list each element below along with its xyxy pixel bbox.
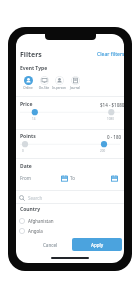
staticText: Online	[20, 86, 36, 90]
button[interactable]: Apply	[72, 238, 122, 251]
staticText: Afghanistan	[28, 218, 54, 224]
staticText: Apply	[91, 242, 104, 248]
staticText: Price	[20, 101, 33, 108]
staticText: Clear filters	[97, 51, 124, 58]
staticText: 200	[100, 149, 106, 153]
button[interactable]: In-person	[51, 76, 67, 90]
other: Search	[19, 195, 25, 201]
staticText: 0	[22, 149, 24, 153]
staticText: Country	[20, 206, 41, 213]
staticText: On-Site	[36, 86, 52, 90]
other: Pick date	[111, 175, 118, 182]
staticText: Cancel	[43, 242, 58, 248]
other: Pick date	[61, 175, 68, 182]
staticText: 1080	[107, 117, 114, 121]
staticText: In-person	[51, 86, 67, 90]
staticText: To	[70, 175, 75, 181]
button[interactable]: Cancel	[30, 238, 70, 251]
staticText: Points	[20, 133, 36, 140]
button[interactable]: To	[70, 173, 118, 183]
button[interactable]: On-Site	[36, 76, 52, 90]
staticText: Journal	[67, 86, 83, 90]
staticText: From	[20, 175, 32, 181]
button[interactable]: Clear filters	[97, 51, 124, 58]
staticText: 0 - 180	[107, 134, 122, 140]
staticText: Search	[28, 195, 43, 201]
button[interactable]: Journal	[67, 76, 83, 90]
button[interactable]: Angola	[19, 226, 89, 235]
staticText: Filters	[20, 50, 42, 60]
staticText: 14	[32, 117, 36, 121]
button[interactable]: Online	[20, 76, 36, 90]
staticText: Date	[20, 163, 32, 170]
button[interactable]: From	[20, 173, 68, 183]
staticText: $14 - $1080	[100, 102, 124, 108]
staticText: Event Type	[20, 65, 48, 72]
button[interactable]: Afghanistan	[19, 216, 89, 225]
staticText: Angola	[28, 228, 43, 234]
button[interactable]: Search	[19, 193, 121, 203]
